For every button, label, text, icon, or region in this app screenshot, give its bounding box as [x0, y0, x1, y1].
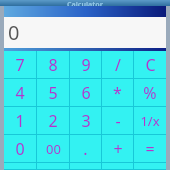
- staticText: 7: [15, 54, 25, 76]
- staticText: Calculator: [67, 0, 103, 6]
- staticText: 00: [46, 140, 61, 158]
- staticText: +: [113, 138, 123, 160]
- button[interactable]: 7: [4, 51, 36, 78]
- staticText: =: [145, 138, 155, 160]
- staticText: %: [143, 82, 157, 104]
- staticText: 8: [48, 54, 58, 76]
- button[interactable]: 1/x: [134, 107, 166, 134]
- staticText: 6: [81, 82, 91, 104]
- button[interactable]: 5: [37, 79, 69, 106]
- button[interactable]: 0: [4, 17, 166, 48]
- button[interactable]: -: [102, 107, 133, 134]
- button[interactable]: 1: [4, 107, 36, 134]
- button[interactable]: =: [134, 135, 166, 162]
- staticText: /: [115, 54, 121, 76]
- button[interactable]: 9: [70, 51, 101, 78]
- staticText: .: [83, 138, 88, 160]
- button[interactable]: +: [102, 135, 133, 162]
- button[interactable]: 4: [4, 79, 36, 106]
- staticText: -: [115, 110, 121, 132]
- button[interactable]: 2: [37, 107, 69, 134]
- staticText: 0: [15, 138, 25, 160]
- staticText: 2: [48, 110, 58, 132]
- button[interactable]: .: [70, 135, 101, 162]
- button[interactable]: %: [134, 79, 166, 106]
- staticText: 5: [48, 82, 58, 104]
- button[interactable]: 00: [37, 135, 69, 162]
- staticText: C: [145, 54, 156, 76]
- staticText: 0: [8, 19, 20, 46]
- staticText: *: [113, 82, 122, 104]
- staticText: 3: [81, 110, 91, 132]
- staticText: 9: [81, 54, 91, 76]
- button[interactable]: *: [102, 79, 133, 106]
- button[interactable]: 6: [70, 79, 101, 106]
- button[interactable]: 0: [4, 135, 36, 162]
- staticText: 1: [15, 110, 25, 132]
- button[interactable]: 3: [70, 107, 101, 134]
- button[interactable]: /: [102, 51, 133, 78]
- button[interactable]: 8: [37, 51, 69, 78]
- staticText: 1/x: [140, 112, 160, 130]
- staticText: 4: [15, 82, 25, 104]
- button[interactable]: C: [134, 51, 166, 78]
